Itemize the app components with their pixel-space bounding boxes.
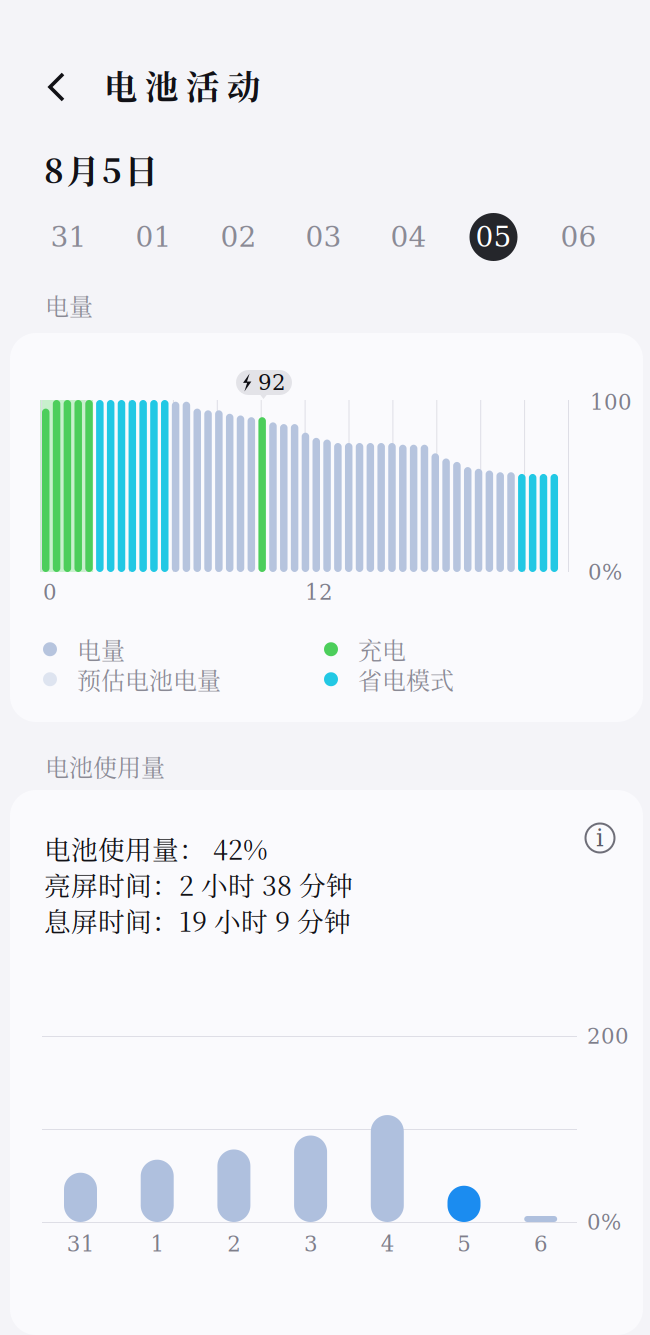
staticText: 6: [534, 1232, 548, 1256]
staticText: 0%: [587, 1210, 621, 1235]
staticText: 0: [43, 580, 57, 605]
button[interactable]: 05: [451, 212, 536, 262]
staticText: 3: [304, 1232, 318, 1256]
button[interactable]: 31: [26, 212, 111, 262]
staticText: 电池使用量： 42%: [44, 829, 268, 867]
staticText: 充电: [358, 632, 406, 666]
staticText: 31: [67, 1232, 95, 1256]
button[interactable]: 01: [111, 212, 196, 262]
button[interactable]: 03: [281, 212, 366, 262]
staticText: 05: [475, 221, 511, 253]
button[interactable]: 06: [536, 212, 621, 262]
staticText: 省电模式: [358, 662, 454, 696]
staticText: 亮屏时间：2 小时 38 分钟: [44, 865, 353, 903]
staticText: 04: [390, 221, 426, 253]
staticText: 电量: [77, 632, 125, 666]
staticText: 1: [151, 1232, 165, 1256]
staticText: 31: [50, 221, 86, 253]
staticText: 92: [258, 370, 286, 395]
staticText: 预估电池电量: [77, 662, 221, 696]
staticText: i: [596, 824, 604, 852]
staticText: 12: [305, 580, 333, 605]
button[interactable]: 04: [366, 212, 451, 262]
staticText: 0%: [588, 560, 622, 585]
staticText: 02: [220, 221, 256, 253]
button[interactable]: Back: [33, 63, 81, 111]
staticText: 息屏时间：19 小时 9 分钟: [44, 901, 351, 939]
staticText: 03: [305, 221, 341, 253]
staticText: 8月5日: [44, 145, 157, 193]
staticText: 06: [560, 221, 596, 253]
staticText: 4: [381, 1232, 395, 1256]
staticText: 电量: [45, 288, 93, 322]
staticText: 01: [135, 221, 171, 253]
staticText: 5: [457, 1232, 471, 1256]
staticText: 200: [587, 1024, 629, 1049]
staticText: 2: [227, 1232, 241, 1256]
button[interactable]: 02: [196, 212, 281, 262]
staticText: 电池使用量: [45, 749, 165, 783]
button[interactable]: Info: [583, 821, 617, 855]
staticText: 电池活动: [104, 61, 260, 109]
staticText: 100: [590, 390, 632, 415]
